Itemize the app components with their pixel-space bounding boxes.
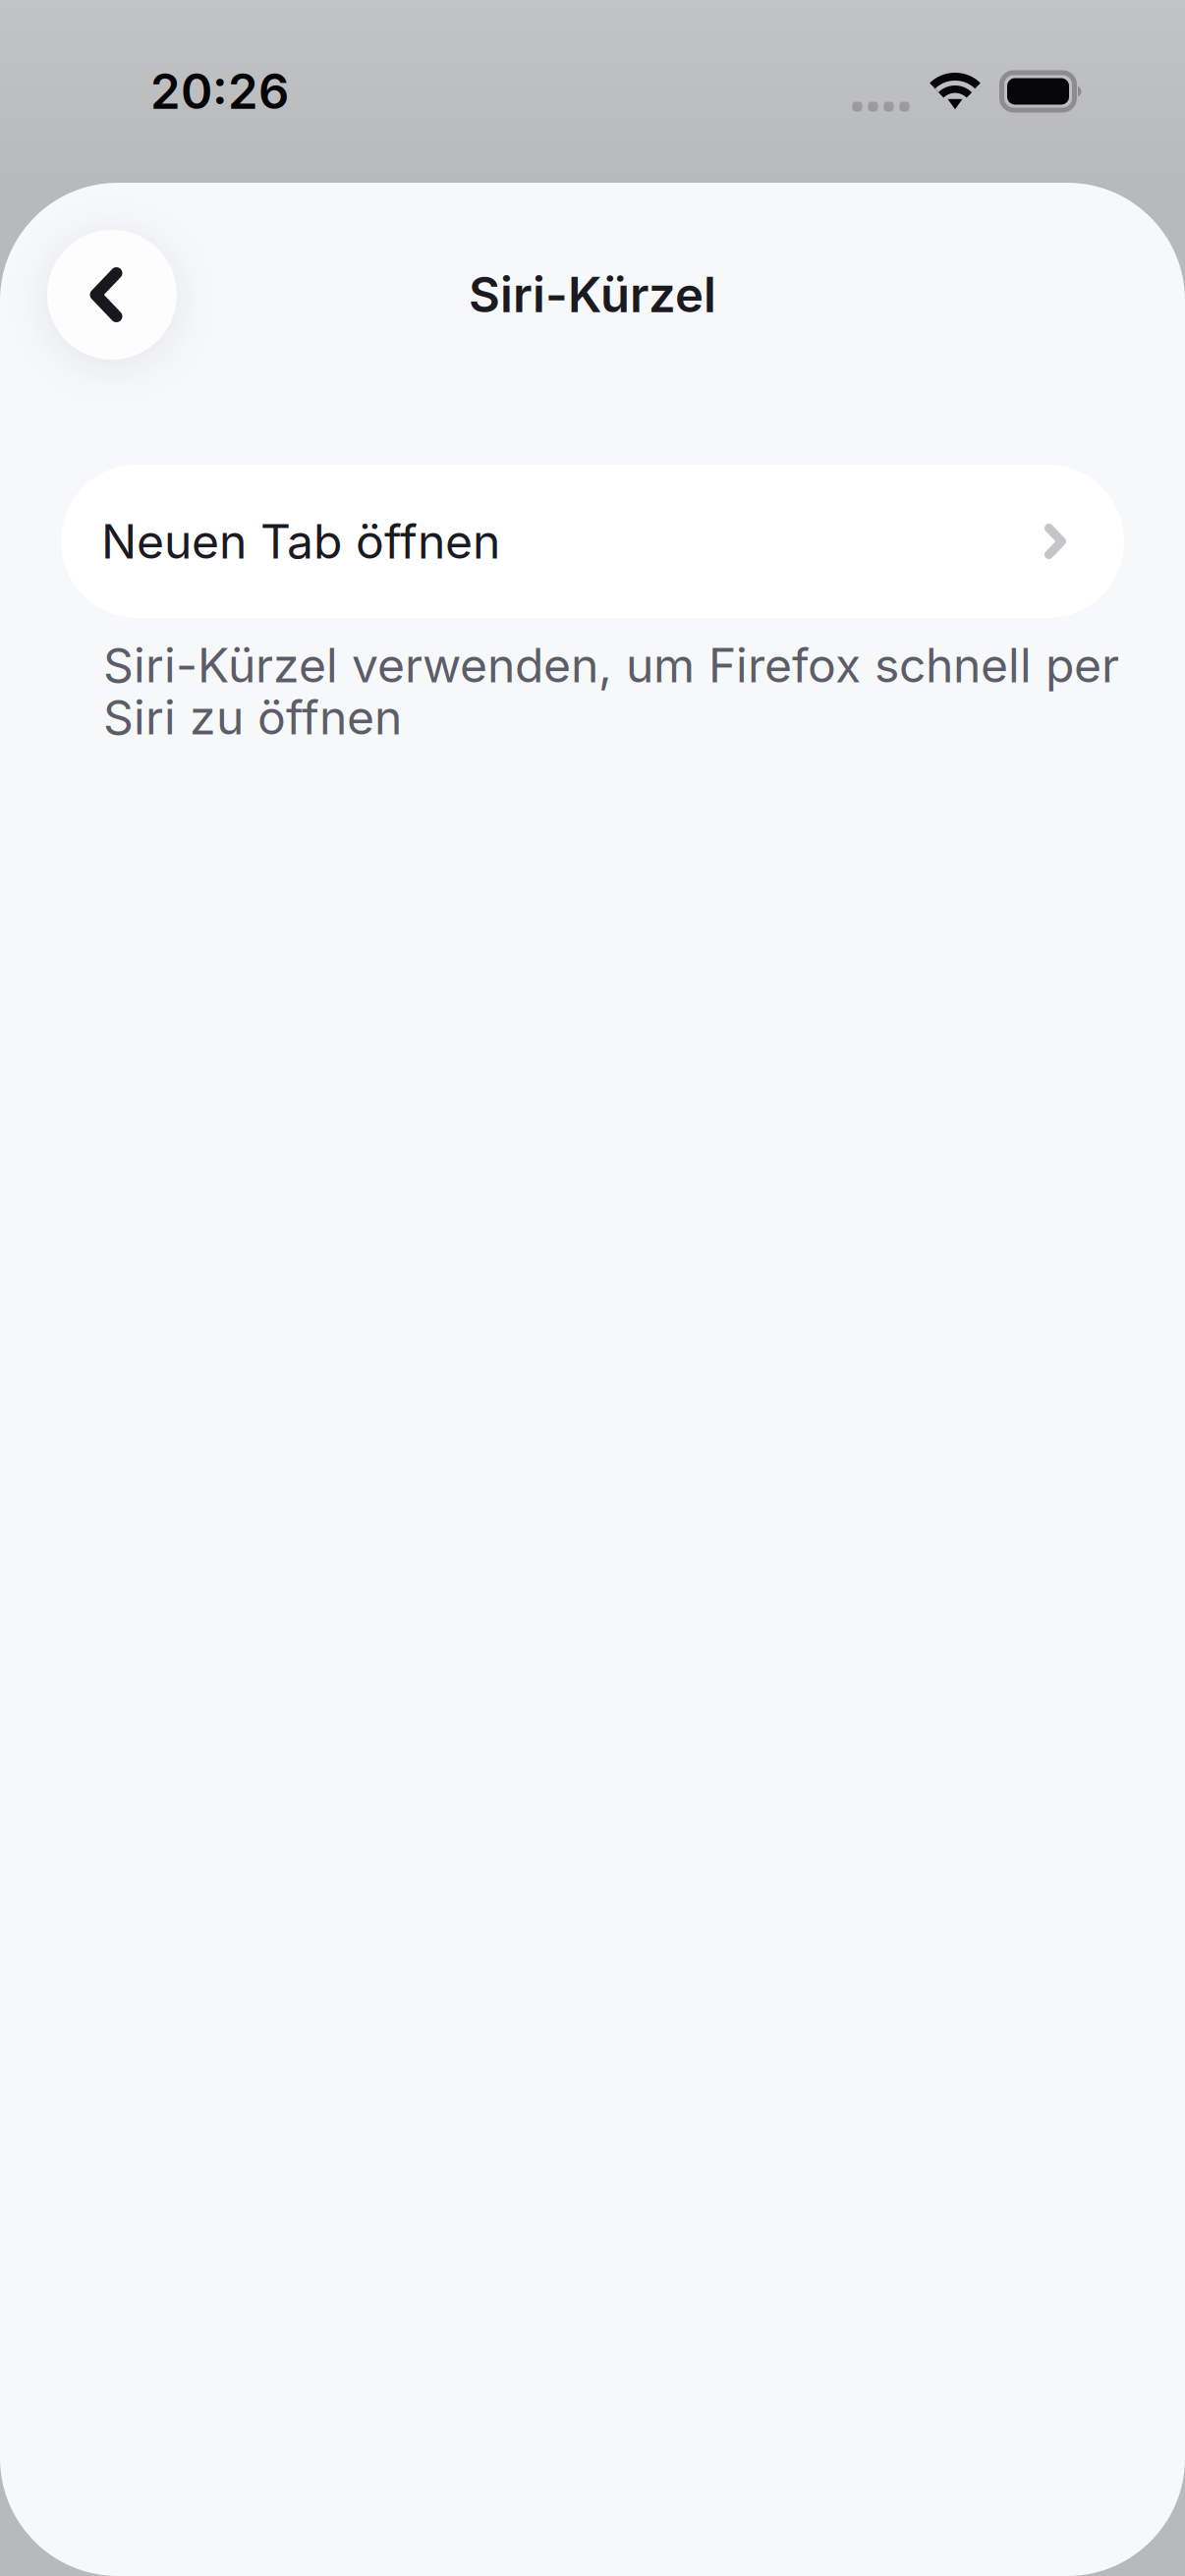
- staticText: Siri-Kürzel: [469, 266, 716, 324]
- staticText: Neuen Tab öffnen: [101, 513, 500, 570]
- staticText: 20:26: [150, 62, 289, 121]
- button[interactable]: Zurück: [47, 230, 177, 360]
- button[interactable]: Neuen Tab öffnen: [61, 465, 1124, 618]
- staticText: Siri-Kürzel verwenden, um Firefox schnel…: [103, 637, 1119, 746]
